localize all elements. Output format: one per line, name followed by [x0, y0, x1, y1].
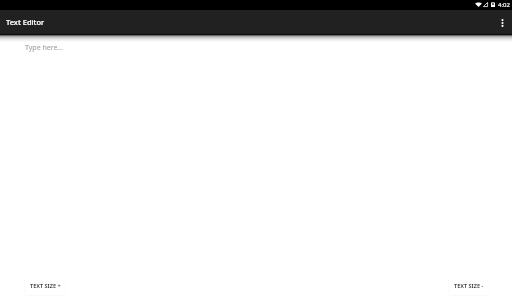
staticText: TEXT SIZE -: [454, 282, 484, 289]
staticText: Type here...: [25, 43, 63, 53]
staticText: 4:02: [498, 1, 510, 9]
staticText: Text Editor: [6, 17, 45, 27]
staticText: TEXT SIZE +: [30, 282, 61, 289]
button[interactable]: More options: [495, 10, 512, 34]
button[interactable]: Text editor input field: [0, 42, 512, 301]
button[interactable]: TEXT SIZE +: [25, 275, 65, 295]
button[interactable]: TEXT SIZE -: [449, 275, 489, 295]
